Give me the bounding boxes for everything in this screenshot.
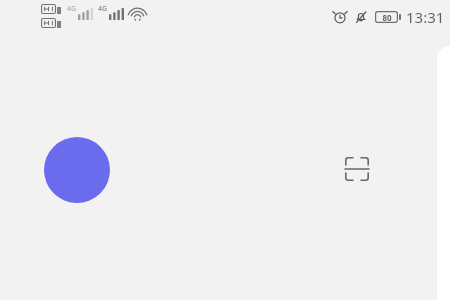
staticText: 4G: [67, 4, 77, 14]
staticText: 80: [382, 12, 392, 23]
button[interactable]: Scan: [337, 149, 377, 189]
staticText: 4G: [98, 4, 108, 14]
button[interactable]: Profile: [44, 137, 110, 203]
staticText: 13:31: [406, 7, 445, 27]
